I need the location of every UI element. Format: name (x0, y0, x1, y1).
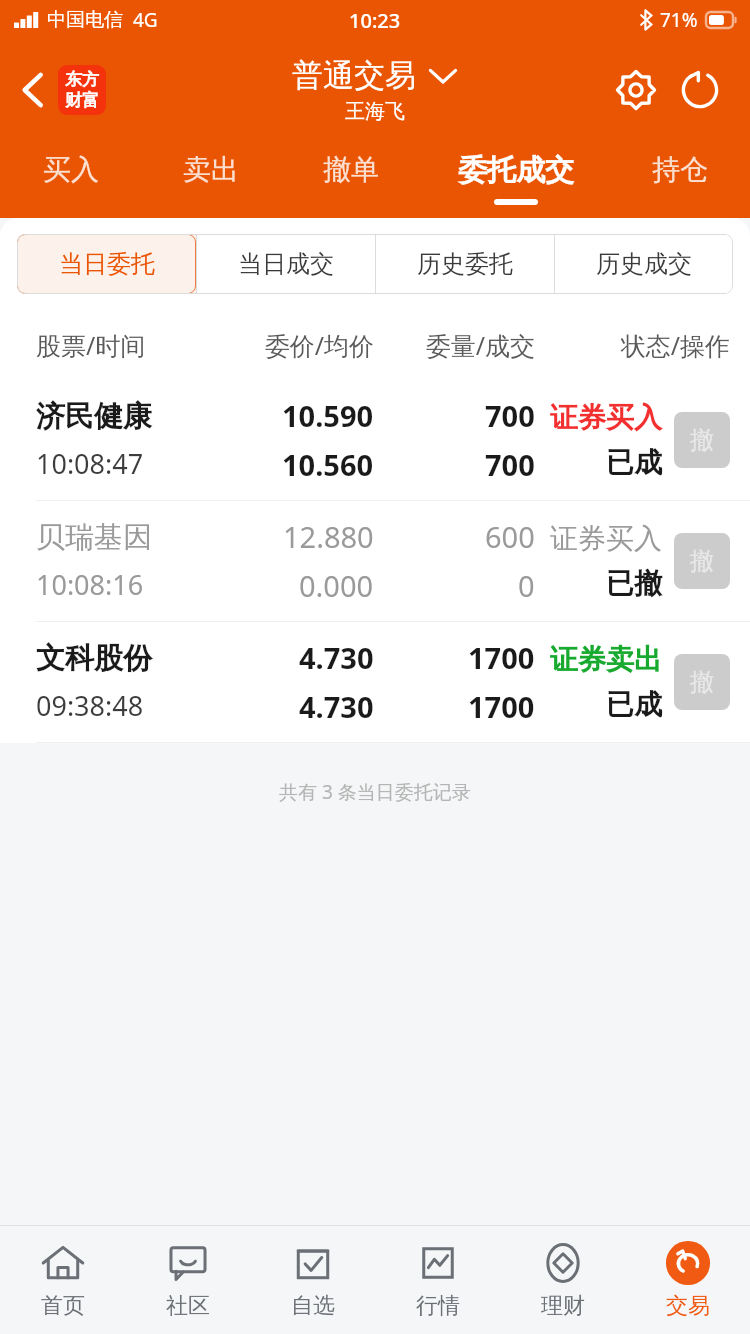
staticText: 10.560 (282, 445, 374, 484)
staticText: 10:08:16 (36, 566, 144, 603)
staticText: 买入 (43, 152, 99, 187)
staticText: 历史成交 (596, 249, 692, 279)
staticText: 持仓 (652, 152, 708, 187)
staticText: 0.000 (299, 566, 374, 605)
staticText: 撤 (690, 546, 714, 576)
staticText: 4.730 (299, 638, 374, 677)
staticText: 已成 (606, 687, 662, 722)
staticText: 财富 (65, 90, 99, 111)
staticText: 撤 (690, 425, 714, 455)
staticText: 10:08:47 (36, 445, 144, 482)
staticText: 共有 3 条当日委托记录 (279, 779, 471, 805)
staticText: 已撤 (606, 566, 662, 601)
staticText: 证券卖出 (550, 642, 662, 677)
staticText: 09:38:48 (36, 687, 144, 724)
staticText: 撤单 (323, 152, 379, 187)
button[interactable]: 撤 (674, 654, 730, 710)
staticText: 4.730 (299, 687, 374, 726)
button[interactable]: 委托成交 (421, 140, 610, 218)
button[interactable]: 返回 (0, 40, 118, 140)
button[interactable]: 当日委托 (17, 234, 196, 294)
staticText: 700 (485, 396, 535, 435)
button[interactable]: 撤单 (281, 140, 421, 218)
staticText: 历史委托 (417, 249, 513, 279)
staticText: 600 (485, 517, 535, 556)
staticText: 撤 (690, 667, 714, 697)
staticText: 行情 (416, 1292, 460, 1320)
staticText: 文科股份 (36, 640, 152, 677)
staticText: 已成 (606, 445, 662, 480)
staticText: 贝瑞基因 (36, 519, 152, 556)
button[interactable]: 理财 (500, 1226, 625, 1334)
staticText: 济民健康 (36, 398, 152, 435)
staticText: 证券买入 (550, 400, 662, 435)
button[interactable]: 济民健康 (0, 380, 750, 500)
button[interactable]: 卖出 (141, 140, 281, 218)
staticText: 4G (133, 7, 158, 33)
button[interactable]: 交易 (625, 1226, 750, 1334)
button[interactable]: 撤 (674, 412, 730, 468)
button[interactable]: 行情 (375, 1226, 500, 1334)
button[interactable]: 贝瑞基因 (0, 501, 750, 621)
button[interactable]: 历史委托 (375, 234, 554, 294)
staticText: 委托成交 (458, 152, 574, 189)
button[interactable]: 持仓 (610, 140, 750, 218)
staticText: 1700 (468, 638, 535, 677)
staticText: 10.590 (282, 396, 374, 435)
staticText: 当日成交 (238, 249, 334, 279)
button[interactable]: 当日成交 (196, 234, 375, 294)
button[interactable]: 撤 (674, 533, 730, 589)
staticText: 王海飞 (345, 99, 405, 124)
staticText: 当日委托 (59, 249, 155, 279)
button[interactable]: 普通交易 (292, 56, 458, 95)
staticText: 委价/均价 (205, 328, 374, 362)
staticText: 证券买入 (550, 521, 662, 556)
staticText: 东方 (65, 69, 99, 90)
staticText: 社区 (166, 1292, 210, 1320)
staticText: 交易 (666, 1292, 710, 1320)
button[interactable]: 自选 (250, 1226, 375, 1334)
staticText: 0 (518, 566, 535, 605)
button[interactable]: 刷新 (672, 62, 728, 118)
staticText: 71% (660, 7, 698, 33)
button[interactable]: 文科股份 (0, 622, 750, 742)
staticText: 自选 (291, 1292, 335, 1320)
staticText: 中国电信 (47, 8, 123, 32)
staticText: 股票/时间 (36, 328, 205, 362)
button[interactable]: 社区 (125, 1226, 250, 1334)
button[interactable]: 买入 (0, 140, 141, 218)
staticText: 12.880 (283, 517, 374, 556)
staticText: 卖出 (183, 152, 239, 187)
staticText: 1700 (468, 687, 535, 726)
button[interactable]: 历史成交 (554, 234, 733, 294)
staticText: 普通交易 (292, 56, 416, 95)
button[interactable]: 设置 (608, 62, 664, 118)
staticText: 委量/成交 (374, 328, 535, 362)
staticText: 700 (485, 445, 535, 484)
staticText: 10:23 (349, 7, 401, 34)
staticText: 理财 (541, 1292, 585, 1320)
button[interactable]: 首页 (0, 1226, 125, 1334)
staticText: 首页 (41, 1292, 85, 1320)
staticText: 状态/操作 (535, 328, 730, 362)
